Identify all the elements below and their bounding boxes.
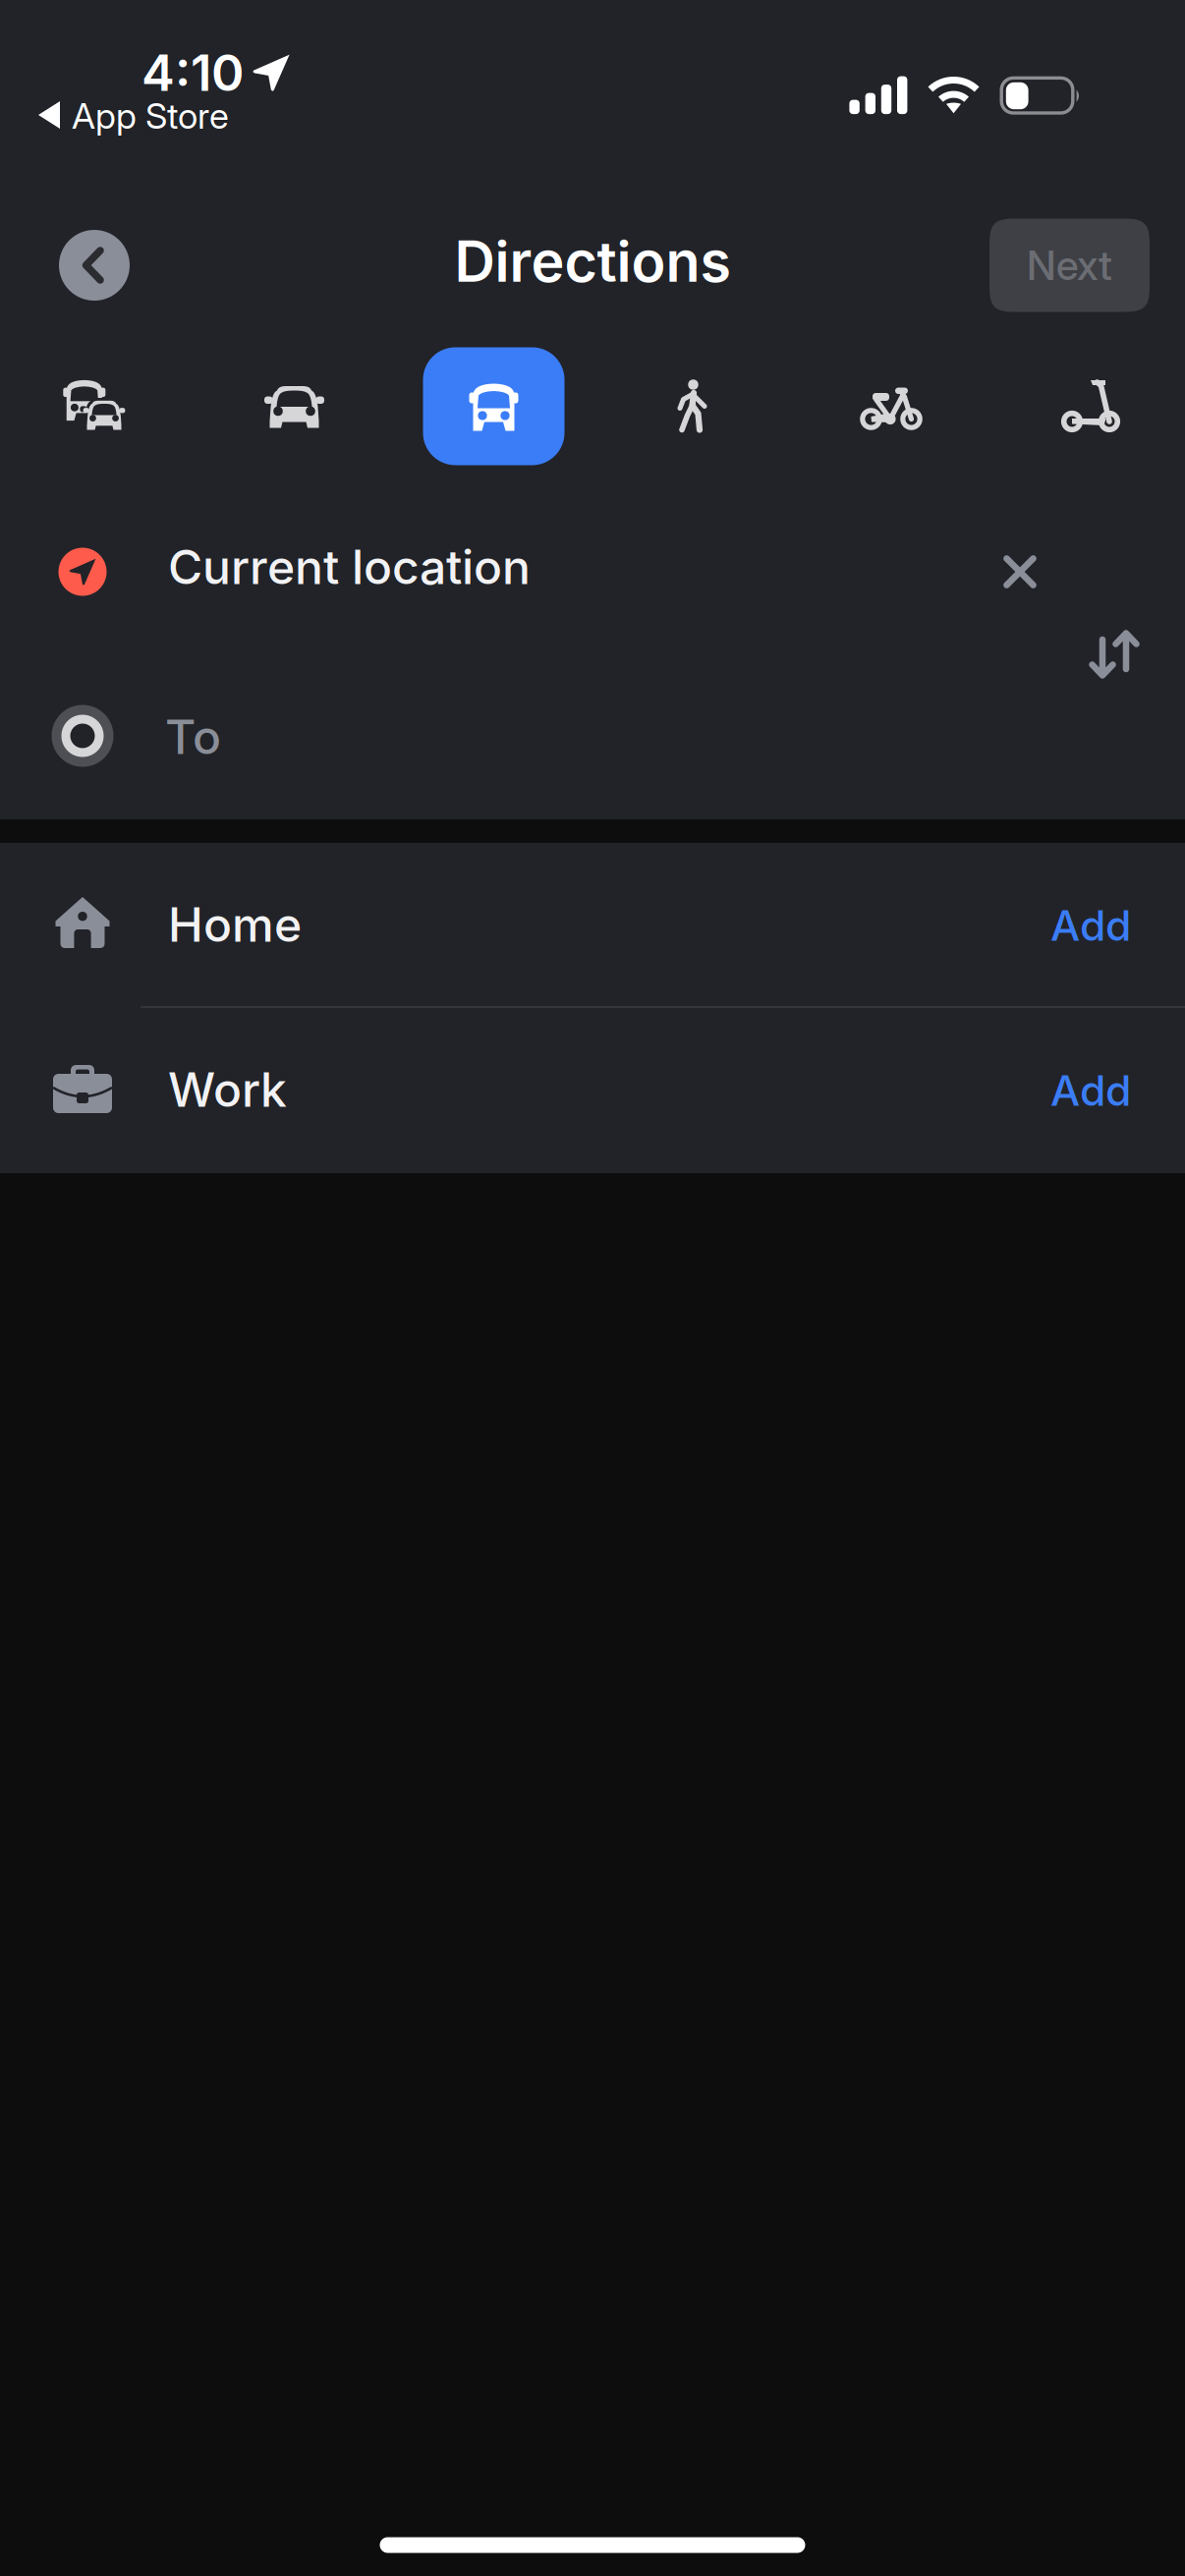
button[interactable]: Next bbox=[989, 219, 1150, 312]
button[interactable]: Swap start and destination bbox=[1060, 600, 1168, 708]
staticText: App Store bbox=[72, 95, 229, 137]
staticText: Next bbox=[1027, 241, 1112, 290]
staticText: Work bbox=[168, 1061, 287, 1118]
button[interactable]: Home bbox=[0, 843, 1185, 1006]
staticText: To bbox=[165, 708, 221, 765]
button[interactable]: Walk bbox=[593, 342, 791, 470]
button[interactable]: Clear bbox=[966, 518, 1074, 626]
staticText: Current location bbox=[168, 538, 531, 595]
button[interactable]: Drive bbox=[196, 343, 393, 471]
staticText: Home bbox=[168, 896, 302, 953]
staticText: Add bbox=[1050, 900, 1131, 951]
button[interactable]: Scooter bbox=[992, 342, 1185, 470]
button[interactable]: Back bbox=[47, 218, 141, 312]
button[interactable]: Ride bbox=[0, 342, 195, 470]
button[interactable]: Work bbox=[0, 1008, 1185, 1171]
staticText: Directions bbox=[454, 227, 731, 295]
button[interactable]: Cycle bbox=[792, 344, 990, 472]
staticText: Add bbox=[1050, 1065, 1131, 1116]
button[interactable]: Transit bbox=[395, 339, 592, 473]
staticText: 4:10 bbox=[141, 43, 244, 103]
